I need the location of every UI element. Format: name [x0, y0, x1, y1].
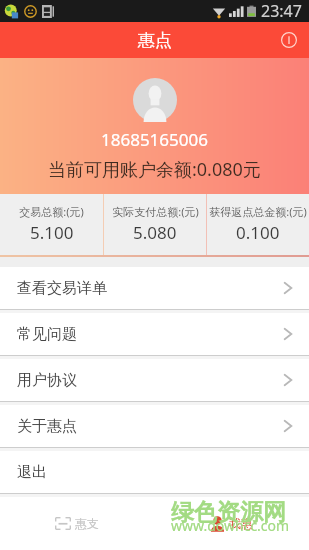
- staticText: 获得返点总金额:(元): [209, 204, 307, 219]
- staticText: 惠点: [138, 30, 172, 51]
- staticText: 关于惠点: [17, 417, 77, 436]
- staticText: 当前可用账户余额:0.080元: [48, 157, 261, 182]
- staticText: 18685165006: [101, 128, 208, 151]
- button[interactable]: 常见问题: [0, 313, 309, 359]
- staticText: 惠支: [75, 516, 99, 531]
- button[interactable]: 用户协议: [0, 359, 309, 405]
- button[interactable]: 关于惠点: [0, 405, 309, 451]
- staticText: 实际支付总额:(元): [112, 204, 199, 219]
- staticText: 查看交易详单: [17, 279, 107, 298]
- staticText: 交易总额:(元): [19, 204, 84, 219]
- button[interactable]: 惠支: [0, 497, 154, 550]
- staticText: 常见问题: [17, 325, 77, 344]
- staticText: www.downcc.com: [171, 516, 290, 535]
- staticText: 用户协议: [17, 371, 77, 390]
- staticText: 绿色资源网: [171, 498, 286, 527]
- staticText: 我惠: [229, 516, 253, 531]
- staticText: 5.100: [30, 221, 74, 244]
- staticText: 5.080: [133, 221, 177, 244]
- button[interactable]: 我惠: [154, 497, 309, 550]
- staticText: 23:47: [261, 0, 302, 22]
- staticText: 退出: [17, 463, 47, 482]
- button[interactable]: Info: [275, 26, 303, 54]
- button[interactable]: 查看交易详单: [0, 267, 309, 313]
- button[interactable]: 退出: [0, 451, 309, 497]
- staticText: 0.100: [236, 221, 280, 244]
